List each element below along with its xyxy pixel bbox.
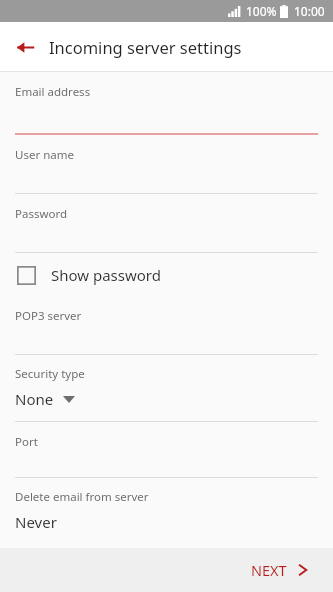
button[interactable]: Show password — [0, 253, 333, 297]
button[interactable]: NEXT — [243, 554, 315, 586]
staticText: NEXT — [251, 560, 287, 580]
staticText: Port — [15, 434, 38, 450]
staticText: Incoming server settings — [49, 36, 242, 58]
button[interactable]: Delete email from server — [0, 478, 333, 532]
button[interactable]: Email address — [0, 72, 333, 135]
staticText: None — [15, 389, 54, 409]
staticText: Security type — [15, 366, 85, 382]
staticText: Never — [15, 512, 57, 532]
staticText: 100% — [246, 3, 277, 19]
button[interactable]: Back — [8, 30, 42, 64]
staticText: Delete email from server — [15, 489, 149, 505]
button[interactable]: Security type — [0, 355, 333, 422]
button[interactable]: POP3 server — [0, 297, 333, 355]
staticText: Show password — [51, 265, 161, 285]
staticText: 10:00 — [294, 3, 325, 19]
button[interactable]: Password — [0, 194, 333, 253]
staticText: User name — [15, 147, 74, 163]
button[interactable]: User name — [0, 135, 333, 194]
staticText: Password — [15, 206, 68, 222]
staticText: Email address — [15, 84, 91, 100]
button[interactable]: Port — [0, 422, 333, 478]
staticText: POP3 server — [15, 308, 82, 324]
